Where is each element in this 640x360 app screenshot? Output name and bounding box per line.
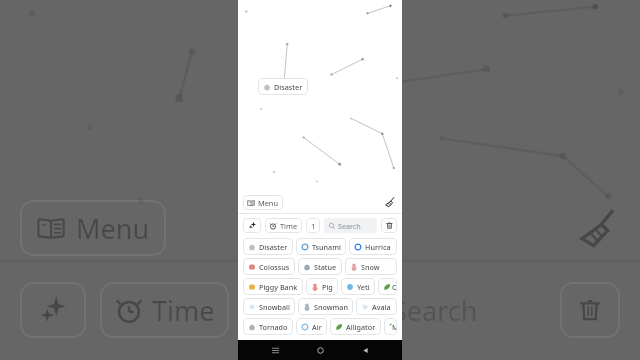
button[interactable]: Mars [384, 318, 397, 335]
button[interactable]: Tornado [243, 318, 293, 335]
button[interactable]: Delete [381, 218, 397, 233]
staticText: Snowball [259, 302, 290, 312]
button[interactable]: Recents [267, 342, 283, 358]
staticText: Tsunami [312, 242, 341, 252]
button[interactable]: Search [324, 218, 377, 233]
button[interactable]: Magic [243, 218, 261, 233]
staticText: Air [312, 322, 322, 332]
button[interactable]: Snowball [243, 298, 295, 315]
staticText: Alligator [346, 322, 376, 332]
button[interactable]: Colossus [243, 258, 295, 275]
staticText: Tornado [259, 322, 288, 332]
staticText: Time [280, 221, 298, 231]
button[interactable]: Back [357, 342, 373, 358]
button[interactable]: Disaster [258, 78, 308, 95]
button[interactable]: Home [312, 342, 328, 358]
button[interactable]: Piggy Bank [243, 278, 303, 295]
staticText: Hurricane [365, 242, 392, 252]
button[interactable]: Avalanche [356, 298, 397, 315]
staticText: Piggy Bank [259, 282, 298, 292]
button[interactable]: Time [265, 218, 302, 233]
button[interactable]: Snow Pig [345, 258, 397, 275]
button[interactable]: 1 [306, 218, 320, 233]
staticText: Snow Pig [361, 262, 392, 272]
button[interactable]: Clear canvas [383, 195, 397, 209]
button[interactable]: Disaster [243, 238, 293, 255]
staticText: Disaster [259, 242, 288, 252]
button[interactable]: Air [296, 318, 327, 335]
button[interactable]: Alligator [330, 318, 381, 335]
staticText: Search [338, 221, 361, 231]
button[interactable]: Statue [298, 258, 342, 275]
button[interactable]: Pig [306, 278, 338, 295]
staticText: Disaster [274, 82, 303, 92]
button[interactable]: Yeti [341, 278, 375, 295]
staticText: Menu [258, 198, 279, 208]
button[interactable]: Hurricane [349, 238, 397, 255]
staticText: Search [392, 292, 478, 329]
staticText: Colossus [259, 262, 290, 272]
staticText: 1 [311, 221, 316, 231]
staticText: Snowman [314, 302, 348, 312]
button[interactable]: Snowman [298, 298, 353, 315]
staticText: Yeti [357, 282, 370, 292]
button[interactable]: Tsunami [296, 238, 346, 255]
staticText: Menu [76, 210, 150, 247]
staticText: Pig [322, 282, 333, 292]
staticText: Statue [314, 262, 337, 272]
button[interactable]: Croco [378, 278, 397, 295]
staticText: Avalanche [372, 302, 392, 312]
button[interactable]: Menu [243, 195, 283, 210]
staticText: Time [152, 292, 215, 329]
